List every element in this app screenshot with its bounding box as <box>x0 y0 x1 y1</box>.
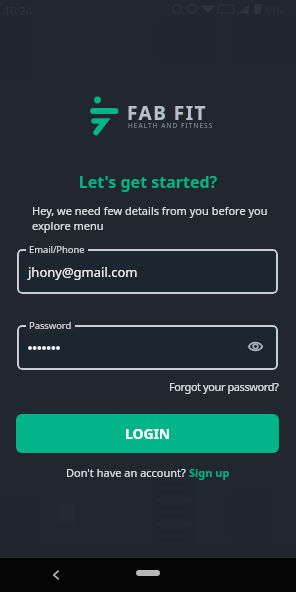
staticText: Don't have an account? <box>66 465 189 480</box>
button[interactable]: Back <box>47 566 65 584</box>
staticText: 88% <box>265 3 283 15</box>
button[interactable]: Forgot your password? <box>169 379 279 394</box>
staticText: Hey, we need few details from you before… <box>32 203 274 233</box>
button[interactable]: Home <box>136 570 160 576</box>
staticText: HEALTH AND FITNESS <box>128 121 214 130</box>
button[interactable]: Sign up <box>189 465 230 480</box>
staticText: Let's get started? <box>0 171 296 193</box>
staticText: 10:24 <box>4 3 33 18</box>
staticText: jhony@gmail.com <box>28 263 138 281</box>
button[interactable]: Show password <box>17 325 278 370</box>
staticText: Email/Phone <box>29 243 85 256</box>
button[interactable]: LOGIN <box>16 414 279 453</box>
button[interactable]: jhony@gmail.com <box>17 249 278 294</box>
staticText: FAB FIT <box>127 100 208 126</box>
staticText: LOGIN <box>125 424 171 443</box>
button[interactable]: Show password <box>243 334 267 358</box>
staticText: Password <box>29 319 72 332</box>
